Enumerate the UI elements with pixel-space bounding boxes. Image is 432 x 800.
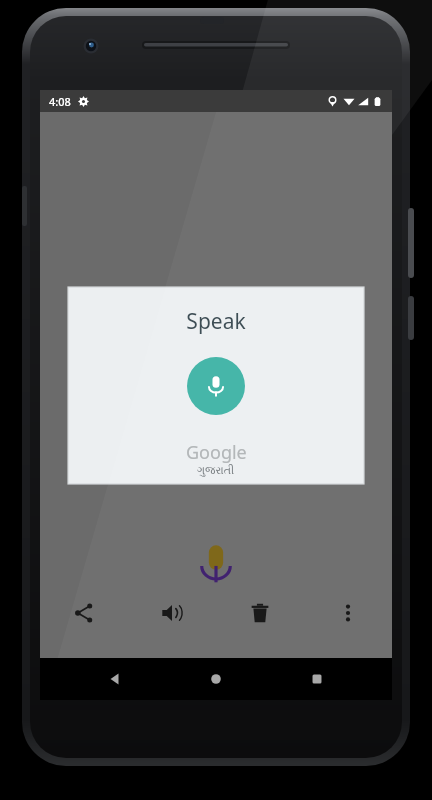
button[interactable]: Start voice input [187,357,245,415]
staticText: Speak [186,307,246,336]
staticText: 4:08 [49,94,71,109]
button[interactable]: Back [95,659,135,699]
button[interactable]: Home [196,659,236,699]
staticText: Google [186,440,247,465]
button[interactable]: Speak [68,287,364,484]
button[interactable]: Delete [216,589,304,637]
button[interactable]: Share [40,589,128,637]
button[interactable]: More options [304,589,392,637]
staticText: ગુજરાતી [197,465,235,476]
button[interactable]: Recent apps [297,659,337,699]
button[interactable]: Listening [190,537,242,589]
button[interactable]: Volume [128,589,216,637]
